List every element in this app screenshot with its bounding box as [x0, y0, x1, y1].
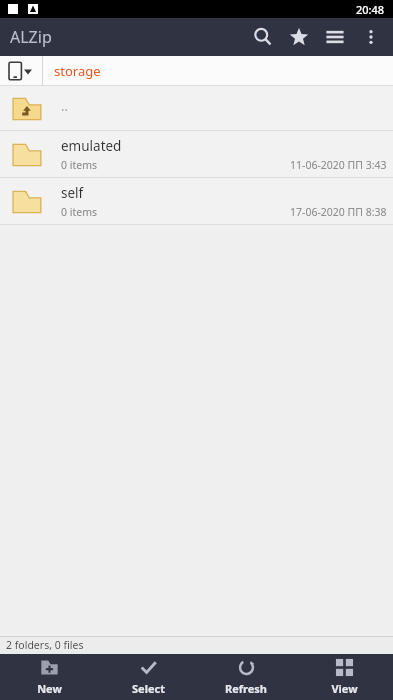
- button[interactable]: ..: [0, 86, 393, 131]
- button[interactable]: Select: [99, 654, 197, 700]
- staticText: View: [331, 681, 358, 696]
- staticText: emulated: [61, 137, 122, 155]
- staticText: self: [61, 184, 84, 202]
- button[interactable]: New: [0, 654, 99, 700]
- button[interactable]: View: [295, 654, 393, 700]
- button[interactable]: Menu: [317, 18, 353, 56]
- button[interactable]: Favorites: [281, 18, 317, 56]
- staticText: 20:48: [356, 2, 385, 17]
- staticText: New: [37, 681, 62, 696]
- staticText: 11-06-2020 ПП 3:43: [290, 158, 387, 172]
- staticText: Select: [132, 681, 165, 696]
- button[interactable]: More options: [353, 18, 389, 56]
- button[interactable]: emulated: [0, 131, 393, 178]
- staticText: 0 items: [61, 158, 98, 172]
- staticText: ..: [61, 97, 68, 115]
- staticText: 17-06-2020 ПП 8:38: [290, 205, 387, 219]
- staticText: 0 items: [61, 205, 98, 219]
- button[interactable]: Search: [245, 18, 281, 56]
- button[interactable]: self: [0, 178, 393, 225]
- staticText: Refresh: [225, 681, 267, 696]
- staticText: 2 folders, 0 files: [6, 638, 84, 652]
- staticText: storage: [54, 62, 101, 80]
- button[interactable]: Select storage: [0, 56, 42, 86]
- button[interactable]: storage: [43, 56, 112, 86]
- button[interactable]: Refresh: [197, 654, 295, 700]
- staticText: ALZip: [10, 26, 52, 48]
